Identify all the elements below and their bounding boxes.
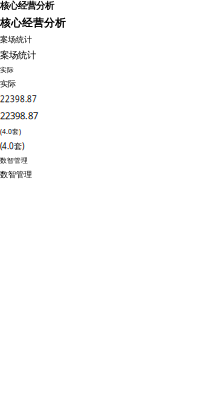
staticText: 实际: [0, 66, 14, 74]
staticText: 案场统计: [0, 49, 36, 61]
staticText: 核心经营分析: [0, 0, 54, 11]
staticText: (4.0套): [0, 127, 21, 136]
staticText: 22398.87: [0, 94, 37, 104]
staticText: 核心经营分析: [0, 16, 66, 30]
staticText: (4.0套): [0, 141, 24, 151]
staticText: 实际: [0, 79, 16, 89]
staticText: 案场统计: [0, 35, 32, 44]
staticText: 数智管理: [0, 156, 28, 165]
staticText: 数智管理: [0, 170, 32, 179]
staticText: 22398.87: [0, 109, 38, 122]
